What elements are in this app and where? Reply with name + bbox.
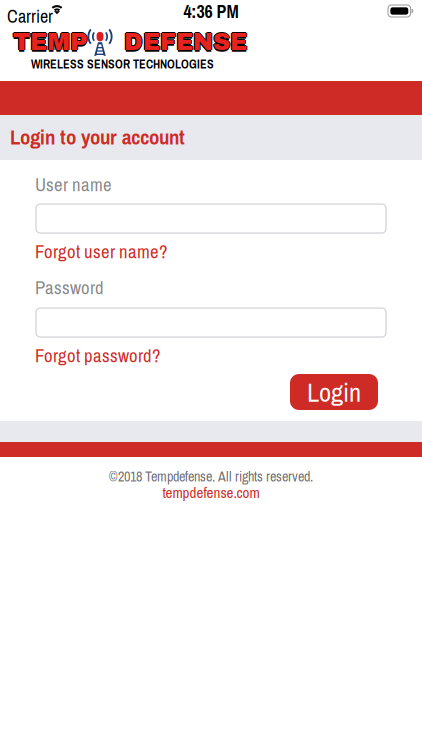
staticText: TEMP [13,28,87,54]
button[interactable]: tempdefense.com [0,485,422,500]
staticText: DEFENSE [125,29,248,55]
staticText: TEMP [14,29,88,55]
staticText: 4:36 PM [183,0,238,24]
staticText: DEFENSE [124,29,247,55]
staticText: Forgot user name? [35,239,168,264]
staticText: WIRELESS SENSOR TECHNOLOGIES [31,56,214,72]
staticText: Password [35,275,104,300]
staticText: TEMP [13,29,87,55]
staticText: TEMP [12,29,86,55]
button[interactable]: Forgot password? [35,345,165,366]
staticText: Forgot password? [35,343,161,368]
staticText: User name [35,172,112,197]
staticText: DEFENSE [123,29,246,55]
staticText: TEMP [13,31,87,57]
button[interactable]: Forgot user name? [35,241,170,262]
staticText: DEFENSE [124,28,247,54]
staticText: Login [307,374,361,410]
button[interactable]: Login [290,374,378,410]
staticText: DEFENSE [124,31,247,57]
staticText: Carrier [7,4,53,28]
staticText: tempdefense.com [162,482,259,503]
staticText: Login to your account [10,123,185,151]
staticText: ©2018 Tempdefense. All rights reserved. [109,467,313,486]
